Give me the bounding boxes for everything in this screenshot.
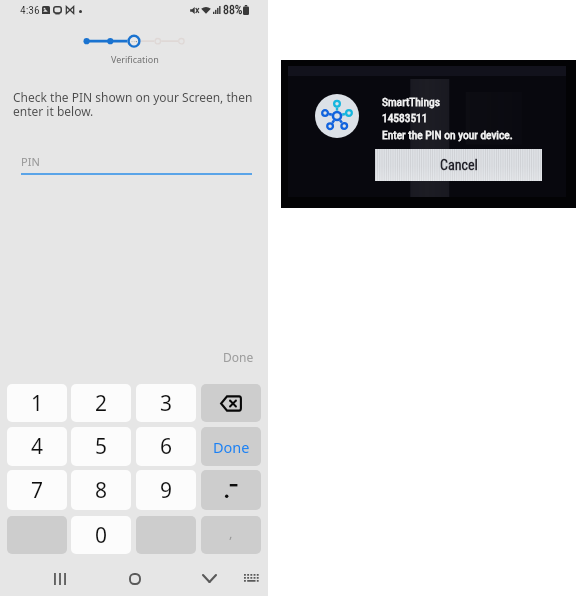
staticText: SmartThings	[382, 95, 440, 108]
button[interactable]: Home	[119, 563, 150, 594]
button[interactable]: 6	[136, 427, 196, 466]
staticText: 8	[95, 476, 108, 505]
button[interactable]	[201, 470, 261, 510]
staticText: 3	[160, 389, 173, 418]
button[interactable]: 0	[71, 516, 131, 554]
staticText: 9	[160, 476, 173, 505]
staticText: Done	[223, 349, 254, 365]
staticText: PIN	[21, 154, 40, 169]
button[interactable]: 8	[71, 470, 131, 510]
staticText: Enter the PIN on your device.	[382, 128, 513, 141]
staticText: Verification	[111, 53, 159, 65]
button[interactable]: Hide keyboard	[194, 563, 225, 594]
staticText: 4	[31, 432, 44, 461]
button[interactable]: Done	[201, 427, 261, 466]
staticText: 5	[95, 432, 108, 461]
staticText: ,	[229, 524, 233, 542]
button[interactable]: 5	[71, 427, 131, 466]
staticText: Cancel	[440, 157, 478, 173]
button[interactable]: 7	[7, 470, 67, 510]
staticText: 4:36	[20, 3, 40, 16]
button[interactable]: 2	[71, 384, 131, 422]
button[interactable]: Backspace	[201, 384, 261, 422]
button[interactable]: 1	[7, 384, 67, 422]
staticText: 0	[95, 521, 108, 550]
button[interactable]: Switch keyboard	[236, 563, 267, 594]
staticText: Check the PIN shown on your Screen, then…	[13, 89, 257, 120]
staticText: 1	[31, 389, 44, 418]
staticText: 14583511	[382, 111, 428, 124]
button[interactable]: Cancel	[375, 149, 542, 181]
staticText: 88%	[223, 3, 243, 17]
button[interactable]: 9	[136, 470, 196, 510]
button[interactable]: Done	[216, 346, 260, 368]
staticText: Done	[213, 437, 250, 457]
button[interactable]: 3	[136, 384, 196, 422]
button[interactable]	[201, 384, 261, 422]
button[interactable]: Recents	[44, 563, 75, 594]
staticText: 7	[31, 476, 44, 505]
staticText: 2	[95, 389, 108, 418]
staticText: 6	[160, 432, 173, 461]
button[interactable]: 4	[7, 427, 67, 466]
button[interactable]	[201, 427, 261, 466]
